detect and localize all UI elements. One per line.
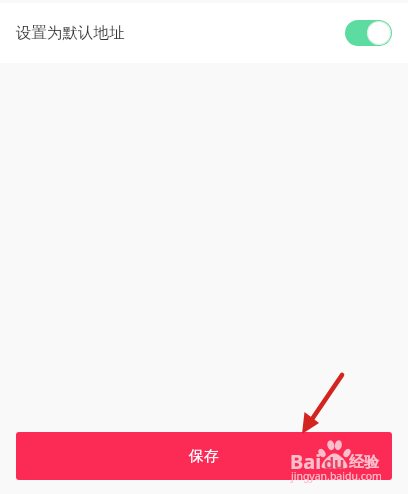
staticText: 保存	[189, 447, 219, 466]
staticText: jingyan.baidu.com	[291, 469, 382, 483]
button[interactable]: 保存	[16, 432, 392, 480]
button[interactable]: Set as default address toggle	[345, 20, 392, 46]
staticText: du	[324, 452, 345, 474]
staticText: Bai	[290, 448, 322, 475]
staticText: 经验	[349, 453, 379, 472]
staticText: 设置为默认地址	[16, 23, 125, 43]
button[interactable]: 设置为默认地址	[0, 3, 408, 63]
